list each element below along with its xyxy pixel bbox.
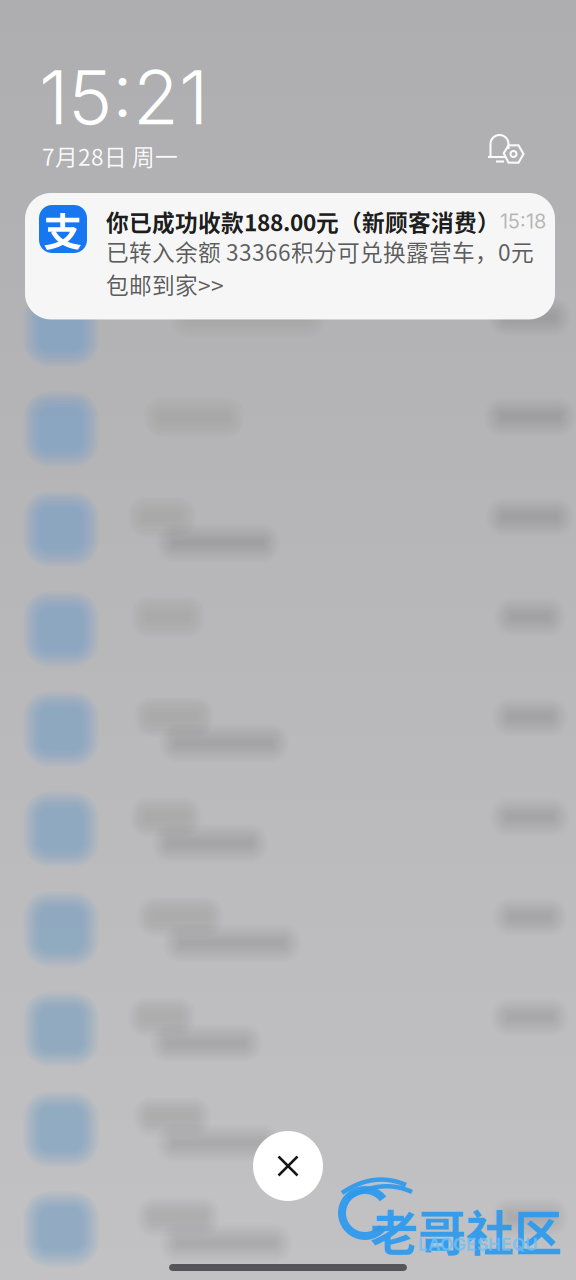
staticText: 15:21 [39,52,208,142]
button[interactable]: Notification settings [488,52,526,166]
staticText: 你已成功收款188.00元（新顾客消费） [106,205,500,238]
button[interactable]: 支 [25,193,555,319]
staticText: 已转入余额 33366积分可兑换露营车，0元包邮到家>> [106,235,534,300]
button[interactable]: Dismiss [253,1131,323,1201]
staticText: 15:18 [500,209,546,233]
staticText: 支 [43,201,82,257]
staticText: 7月28日 周一 [42,139,178,172]
staticText: LAOGESHEQU [418,1234,538,1255]
staticText: 老哥社区 [370,1195,562,1264]
